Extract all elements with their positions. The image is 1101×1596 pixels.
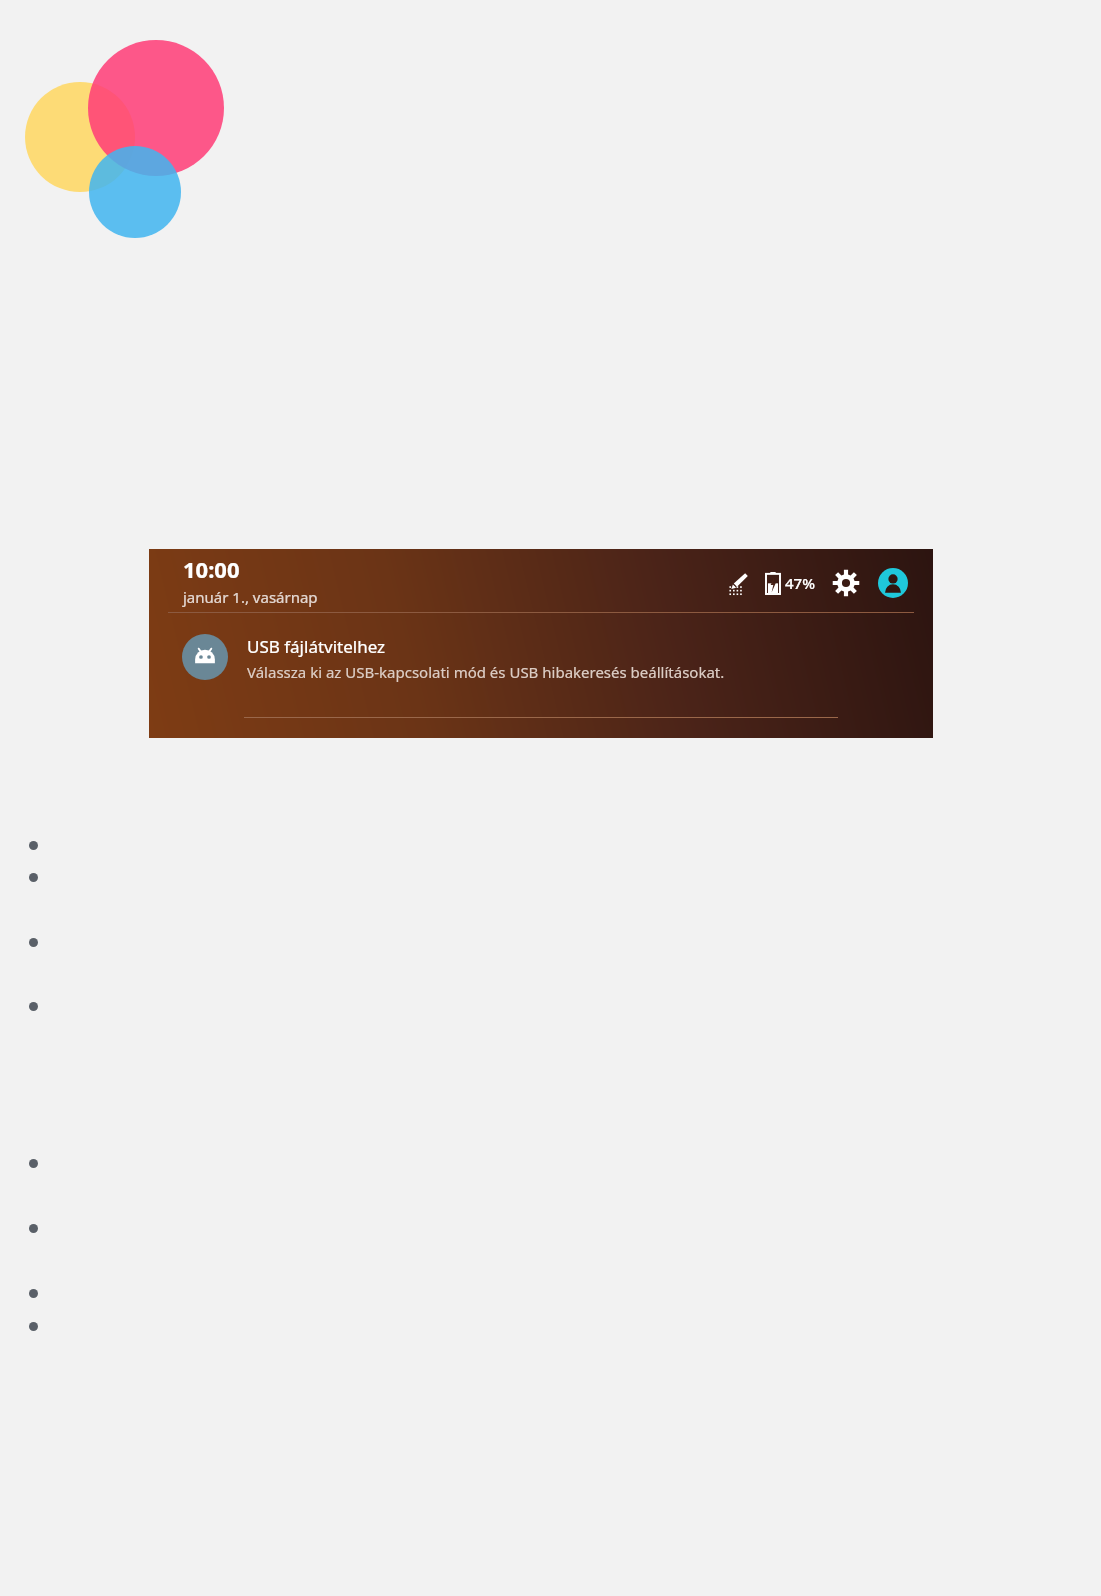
staticText: január 1., vasárnap <box>183 587 318 607</box>
button[interactable]: User profile <box>877 567 909 599</box>
staticText: 10:00 <box>183 554 240 584</box>
button[interactable]: Battery 47 percent charging <box>766 572 815 594</box>
button[interactable]: USB fájlátvitelhez <box>149 613 933 717</box>
button[interactable]: Edit quick settings <box>720 566 754 600</box>
staticText: Válassza ki az USB-kapcsolati mód és USB… <box>247 662 725 682</box>
staticText: USB fájlátvitelhez <box>247 635 386 658</box>
button[interactable]: Settings <box>829 566 863 600</box>
staticText: 47% <box>785 573 815 593</box>
